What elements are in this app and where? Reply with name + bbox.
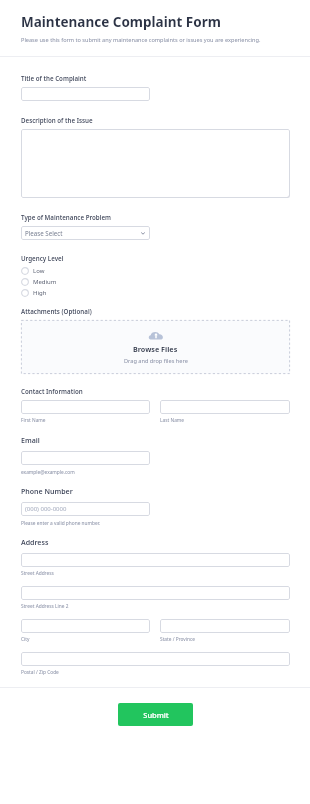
staticText: example@example.com (21, 469, 75, 476)
staticText: Medium (33, 278, 57, 286)
button[interactable]: Low (21, 265, 290, 276)
staticText: Drag and drop files here (124, 357, 188, 365)
button[interactable] (21, 129, 290, 198)
staticText: Browse Files (133, 344, 178, 354)
staticText: Please Select (25, 229, 63, 237)
staticText: Email (21, 436, 40, 446)
staticText: Address (21, 538, 49, 548)
staticText: Last Name (160, 417, 185, 424)
button[interactable]: High (21, 287, 290, 298)
button[interactable] (21, 400, 150, 414)
staticText: Postal / Zip Code (21, 669, 59, 676)
staticText: Urgency Level (21, 254, 64, 262)
staticText: Street Address Line 2 (21, 603, 69, 610)
button[interactable] (21, 87, 150, 101)
staticText: Type of Maintenance Problem (21, 213, 112, 221)
button[interactable]: (000) 000-0000 (21, 502, 150, 516)
button[interactable] (21, 586, 290, 600)
staticText: Please use this form to submit any maint… (21, 36, 261, 44)
staticText: High (33, 289, 47, 297)
staticText: Description of the Issue (21, 116, 93, 124)
staticText: Submit (143, 710, 169, 720)
button[interactable]: Medium (21, 276, 290, 287)
staticText: State / Province (160, 636, 196, 643)
button[interactable] (21, 451, 150, 465)
button[interactable] (21, 619, 150, 633)
staticText: City (21, 636, 30, 643)
staticText: Title of the Complaint (21, 74, 87, 82)
button[interactable] (21, 553, 290, 567)
staticText: Low (33, 267, 45, 275)
staticText: Maintenance Complaint Form (21, 13, 221, 31)
button[interactable]: Please Select (21, 226, 150, 240)
staticText: (000) 000-0000 (25, 505, 67, 513)
button[interactable] (160, 619, 290, 633)
staticText: Phone Number (21, 487, 73, 497)
staticText: Contact Information (21, 387, 83, 395)
button[interactable]: Browse Files, drag and drop files here (21, 320, 290, 374)
staticText: Street Address (21, 570, 54, 577)
staticText: First Name (21, 417, 46, 424)
button[interactable]: Submit (118, 703, 193, 726)
button[interactable] (160, 400, 290, 414)
button[interactable] (21, 652, 290, 666)
staticText: Please enter a valid phone number. (21, 520, 101, 527)
staticText: Attachments (Optional) (21, 307, 92, 315)
